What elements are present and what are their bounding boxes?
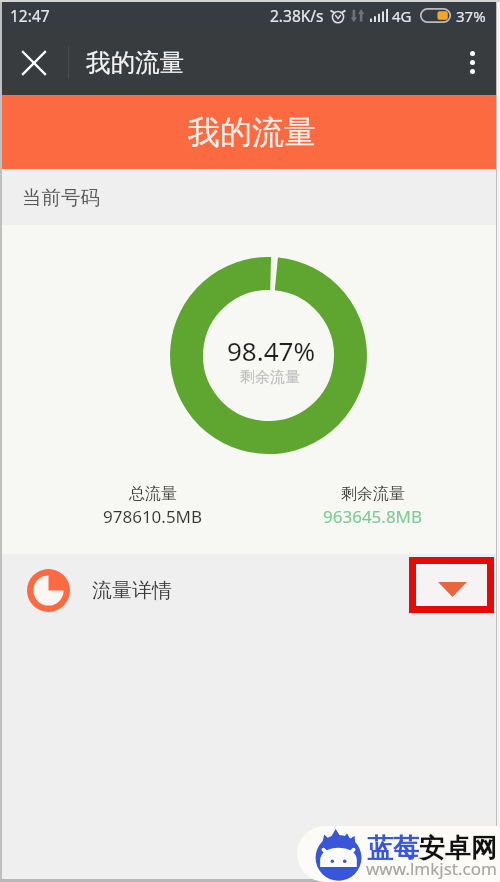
button[interactable]: 流量详情 — [0, 554, 500, 626]
staticText: 安卓网 — [419, 832, 497, 865]
staticText: 2.38K/s — [270, 5, 324, 26]
staticText: 978610.5MB — [103, 505, 203, 528]
staticText: 12:47 — [10, 5, 50, 26]
staticText: 总流量 — [129, 484, 177, 504]
staticText: 剩余流量 — [341, 484, 405, 504]
staticText: 蓝莓 — [367, 832, 419, 865]
staticText: 当前号码 — [22, 185, 100, 210]
button[interactable]: Expand — [416, 564, 487, 606]
staticText: 我的流量 — [188, 112, 316, 152]
staticText: 98.47% — [227, 333, 316, 368]
staticText: 剩余流量 — [240, 368, 300, 387]
staticText: 我的流量 — [86, 47, 184, 78]
staticText: 963645.8MB — [323, 505, 423, 528]
staticText: 37% — [456, 6, 486, 26]
staticText: 4G — [392, 6, 412, 26]
staticText: www.lmkjst.com — [366, 857, 497, 880]
staticText: 流量详情 — [92, 578, 172, 603]
button[interactable]: Close — [0, 30, 68, 95]
button[interactable]: More options — [444, 30, 500, 95]
